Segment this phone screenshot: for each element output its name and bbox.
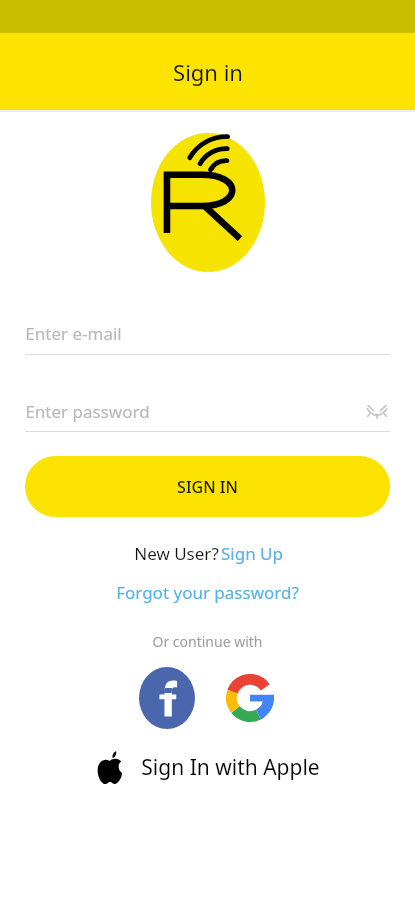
staticText: Sign In with Apple: [141, 753, 320, 782]
button[interactable]: Enter password: [25, 398, 390, 432]
staticText: Enter e-mail: [25, 322, 122, 345]
button[interactable]: Show password: [364, 398, 390, 424]
button[interactable]: Forgot your password?: [116, 581, 299, 604]
staticText: SIGN IN: [177, 476, 238, 498]
button[interactable]: SIGN IN: [25, 456, 390, 517]
button[interactable]: Sign in with Google: [224, 672, 276, 724]
staticText: Sign in: [173, 57, 243, 87]
button[interactable]: Sign in with Facebook: [139, 667, 195, 729]
staticText: Sign Up: [221, 542, 283, 565]
staticText: Forgot your password?: [116, 581, 299, 604]
staticText: New User?: [132, 542, 221, 565]
button[interactable]: Sign Up: [221, 542, 283, 565]
staticText: Or continue with: [152, 632, 263, 651]
staticText: Enter password: [25, 400, 150, 423]
button[interactable]: Enter e-mail: [25, 322, 390, 355]
button[interactable]: Sign In with Apple: [0, 751, 415, 784]
